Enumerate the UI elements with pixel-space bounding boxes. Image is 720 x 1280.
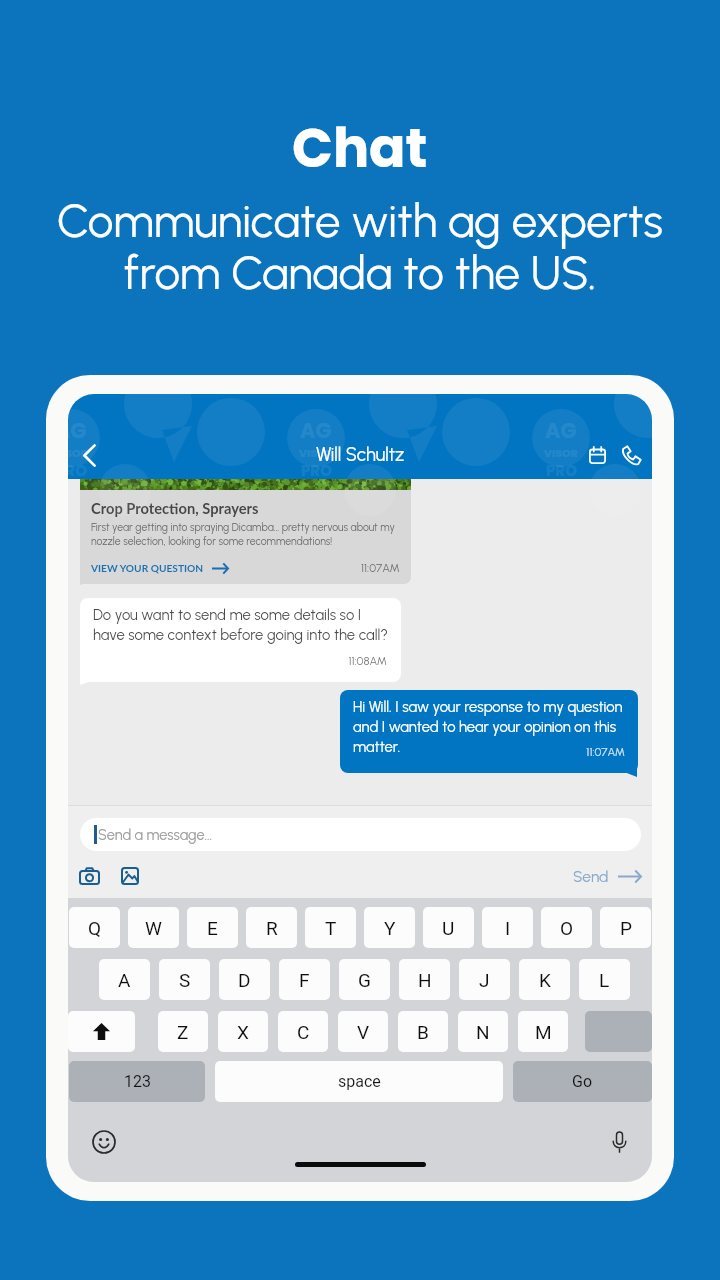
button[interactable]: Back xyxy=(69,435,109,475)
staticText: L xyxy=(599,969,610,991)
button[interactable]: VIEW YOUR QUESTION xyxy=(91,562,229,574)
staticText: O xyxy=(560,917,574,939)
staticText: Crop Protection, Sprayers xyxy=(91,499,259,517)
button[interactable]: G xyxy=(339,959,390,1000)
staticText: First year getting into spraying Dicamba… xyxy=(91,521,400,548)
staticText: 11:07AM xyxy=(361,561,400,575)
staticText: U xyxy=(442,917,455,939)
button[interactable]: Backspace xyxy=(585,1011,652,1052)
staticText: K xyxy=(539,969,551,991)
button[interactable]: C xyxy=(278,1011,328,1052)
button[interactable]: Z xyxy=(158,1011,208,1052)
button[interactable]: space xyxy=(215,1061,503,1102)
button[interactable]: Camera xyxy=(73,860,105,892)
staticText: J xyxy=(479,969,490,991)
button[interactable]: Call xyxy=(614,438,648,472)
staticText: C xyxy=(297,1021,310,1043)
staticText: VISOR xyxy=(68,445,88,460)
staticText: W xyxy=(145,917,162,939)
button[interactable]: K xyxy=(519,959,570,1000)
staticText: R xyxy=(266,917,278,939)
staticText: 123 xyxy=(124,1072,151,1091)
staticText: E xyxy=(207,917,218,939)
staticText: 11:07AM xyxy=(353,745,625,759)
button[interactable]: Y xyxy=(364,907,415,948)
button[interactable]: W xyxy=(128,907,179,948)
staticText: VISOR xyxy=(299,445,333,460)
staticText: VISOR xyxy=(544,445,578,460)
staticText: D xyxy=(238,969,251,991)
button[interactable]: T xyxy=(305,907,356,948)
staticText: S xyxy=(179,969,191,991)
button[interactable]: R xyxy=(246,907,297,948)
staticText: M xyxy=(535,1021,552,1043)
staticText: X xyxy=(237,1021,249,1043)
staticText: Y xyxy=(384,917,396,939)
staticText: PRO xyxy=(68,460,87,481)
staticText: Communicate with ag experts from Canada … xyxy=(57,194,663,301)
staticText: AG xyxy=(68,416,87,445)
button[interactable]: Emoji xyxy=(89,1127,119,1157)
button[interactable]: D xyxy=(219,959,270,1000)
button[interactable]: H xyxy=(399,959,450,1000)
staticText: Q xyxy=(88,917,102,939)
staticText: AG xyxy=(300,416,332,445)
staticText: V xyxy=(357,1021,370,1043)
staticText: Go xyxy=(572,1072,593,1091)
button[interactable]: S xyxy=(159,959,210,1000)
button[interactable]: N xyxy=(458,1011,508,1052)
staticText: G xyxy=(358,969,371,991)
staticText: Hi Will. I saw your response to my quest… xyxy=(353,698,625,756)
button[interactable]: P xyxy=(600,907,651,948)
button[interactable]: Gallery xyxy=(114,860,146,892)
staticText: 11:08AM xyxy=(93,654,387,668)
button[interactable]: Send a message... xyxy=(80,818,641,851)
staticText: P xyxy=(620,917,632,939)
button[interactable]: Calendar xyxy=(580,438,614,472)
button[interactable]: 123 xyxy=(69,1061,205,1102)
button[interactable]: E xyxy=(187,907,238,948)
staticText: space xyxy=(338,1072,381,1091)
staticText: Will Schultz xyxy=(316,444,405,466)
button[interactable]: Microphone xyxy=(604,1127,634,1157)
button[interactable]: F xyxy=(279,959,330,1000)
button[interactable]: Shift xyxy=(68,1011,135,1052)
button[interactable]: U xyxy=(423,907,474,948)
staticText: T xyxy=(325,917,337,939)
staticText: PRO xyxy=(546,460,577,481)
button[interactable]: X xyxy=(218,1011,268,1052)
staticText: Do you want to send me some details so I… xyxy=(93,606,389,644)
staticText: B xyxy=(417,1021,429,1043)
button[interactable]: O xyxy=(541,907,592,948)
staticText: F xyxy=(299,969,310,991)
staticText: Send a message... xyxy=(98,826,213,843)
staticText: Chat xyxy=(292,111,428,186)
button[interactable]: M xyxy=(518,1011,568,1052)
staticText: I xyxy=(505,917,511,939)
staticText: PRO xyxy=(301,460,332,481)
button[interactable]: Go xyxy=(513,1061,652,1102)
button[interactable]: Q xyxy=(69,907,120,948)
staticText: VIEW YOUR QUESTION xyxy=(91,562,204,574)
button[interactable]: A xyxy=(99,959,150,1000)
button[interactable]: Send xyxy=(573,862,642,890)
button[interactable]: I xyxy=(482,907,533,948)
staticText: Send xyxy=(573,867,609,886)
button[interactable]: L xyxy=(579,959,630,1000)
button[interactable]: J xyxy=(459,959,510,1000)
staticText: N xyxy=(476,1021,490,1043)
staticText: AG xyxy=(545,416,577,445)
staticText: H xyxy=(418,969,432,991)
staticText: Z xyxy=(177,1021,189,1043)
button[interactable]: B xyxy=(398,1011,448,1052)
button[interactable]: V xyxy=(338,1011,388,1052)
staticText: A xyxy=(118,969,131,991)
